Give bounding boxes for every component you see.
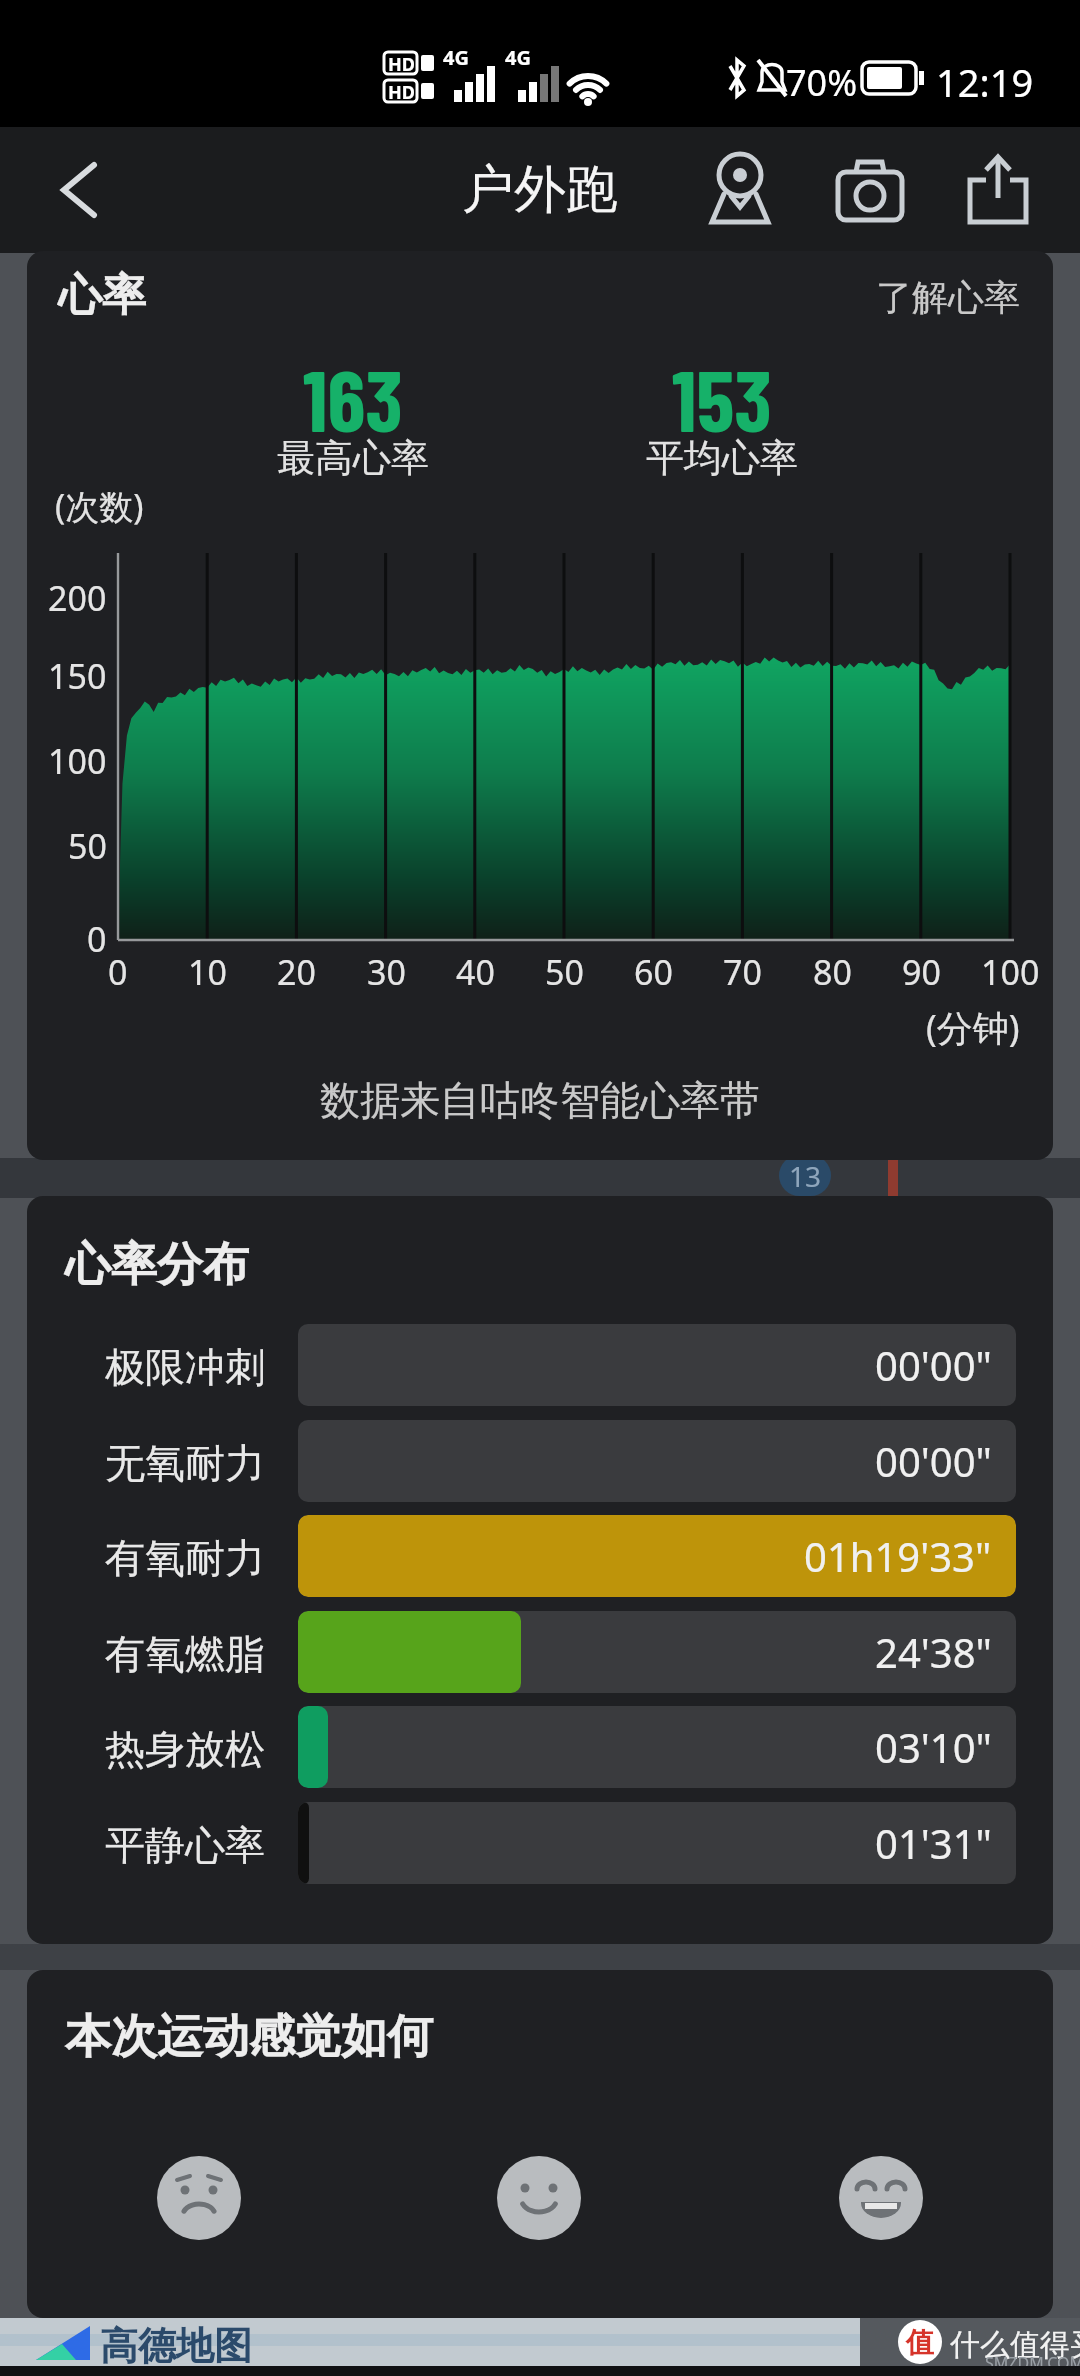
- staticText: 12:19: [936, 56, 1034, 108]
- staticText: 心率分布: [65, 1236, 249, 1294]
- staticText: 数据来自咕咚智能心率带: [320, 1075, 760, 1125]
- staticText: 0: [108, 949, 128, 993]
- staticText: 4G: [443, 44, 469, 71]
- staticText: 无氧耐力: [105, 1438, 265, 1486]
- button[interactable]: 00'00": [298, 1420, 1016, 1502]
- button[interactable]: [157, 2156, 241, 2240]
- staticText: 4G: [505, 44, 531, 71]
- staticText: 平均心率: [646, 434, 798, 482]
- staticText: 30: [367, 949, 406, 993]
- staticText: 01'31": [875, 1816, 992, 1870]
- button[interactable]: 03'10": [298, 1706, 1016, 1788]
- staticText: 100: [981, 949, 1040, 993]
- button[interactable]: 01'31": [298, 1802, 1016, 1884]
- staticText: 163: [303, 346, 403, 436]
- button[interactable]: [958, 150, 1038, 230]
- staticText: 20: [277, 949, 316, 993]
- button[interactable]: [497, 2156, 581, 2240]
- staticText: 200: [48, 575, 107, 619]
- staticText: 01h19'33": [804, 1529, 992, 1583]
- staticText: 了解心率: [876, 275, 1020, 319]
- staticText: 90: [902, 949, 941, 993]
- staticText: 热身放松: [105, 1724, 265, 1772]
- staticText: 高德地图: [100, 2322, 252, 2370]
- staticText: 70: [723, 949, 762, 993]
- button[interactable]: 01h19'33": [298, 1515, 1016, 1597]
- staticText: 值: [906, 2325, 934, 2360]
- staticText: 00'00": [875, 1338, 992, 1392]
- staticText: HD: [388, 80, 415, 105]
- staticText: 70%: [786, 58, 858, 107]
- staticText: 50: [68, 823, 107, 867]
- staticText: 什么值得买: [950, 2326, 1080, 2364]
- button[interactable]: [700, 150, 780, 230]
- staticText: 0: [87, 916, 107, 960]
- staticText: SMZDM.COM: [985, 2352, 1080, 2374]
- staticText: 最高心率: [277, 434, 429, 482]
- staticText: 40: [456, 949, 495, 993]
- button[interactable]: [30, 147, 120, 233]
- staticText: (分钟): [926, 1003, 1020, 1047]
- button[interactable]: [830, 150, 910, 230]
- staticText: 本次运动感觉如何: [65, 2008, 433, 2066]
- staticText: 24'38": [875, 1625, 992, 1679]
- staticText: 153: [672, 346, 772, 436]
- staticText: 平静心率: [105, 1820, 265, 1868]
- button[interactable]: 24'38": [298, 1611, 1016, 1693]
- staticText: 150: [48, 653, 107, 697]
- button[interactable]: [839, 2156, 923, 2240]
- button[interactable]: 了解心率: [820, 275, 1020, 319]
- staticText: 13: [789, 1157, 822, 1195]
- staticText: 有氧耐力: [105, 1533, 265, 1581]
- staticText: 极限冲刺: [105, 1342, 265, 1390]
- staticText: 50: [545, 949, 584, 993]
- staticText: 03'10": [875, 1720, 992, 1774]
- staticText: 有氧燃脂: [105, 1629, 265, 1677]
- button[interactable]: 00'00": [298, 1324, 1016, 1406]
- staticText: 户外跑: [462, 157, 618, 223]
- staticText: (次数): [55, 483, 144, 529]
- staticText: 心率: [58, 268, 146, 323]
- staticText: 10: [188, 949, 227, 993]
- staticText: 100: [48, 738, 107, 782]
- staticText: 60: [634, 949, 673, 993]
- staticText: HD: [388, 52, 415, 77]
- staticText: 80: [813, 949, 852, 993]
- staticText: 00'00": [875, 1434, 992, 1488]
